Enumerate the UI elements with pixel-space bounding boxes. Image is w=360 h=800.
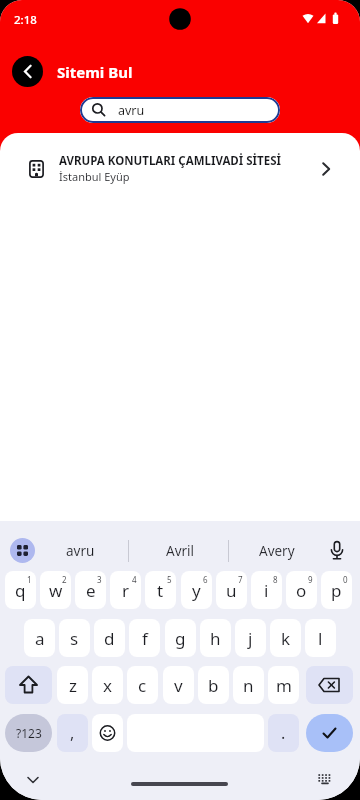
staticText: 7	[238, 574, 243, 585]
staticText: avru	[66, 542, 95, 560]
staticText: b	[208, 674, 219, 697]
button[interactable]: u	[216, 571, 247, 609]
staticText: 6	[203, 574, 208, 585]
staticText: v	[174, 674, 183, 697]
staticText: 1	[27, 574, 32, 585]
staticText: r	[122, 579, 130, 602]
button[interactable]: ,	[57, 714, 88, 752]
button[interactable]: r	[110, 571, 141, 609]
staticText: AVRUPA KONUTLARI ÇAMLIVADİ SİTESİ	[59, 153, 281, 169]
staticText: Avril	[166, 542, 195, 560]
button[interactable]	[5, 666, 52, 704]
button[interactable]	[12, 56, 43, 87]
button[interactable]: l	[305, 619, 336, 657]
button[interactable]	[92, 714, 123, 752]
staticText: .	[281, 722, 286, 744]
button[interactable]: c	[127, 666, 158, 704]
button[interactable]	[306, 714, 353, 752]
staticText: İstanbul Eyüp	[59, 169, 130, 184]
button[interactable]: Avery	[241, 537, 313, 565]
staticText: 8	[273, 574, 278, 585]
staticText: e	[86, 579, 96, 602]
staticText: 3	[97, 574, 102, 585]
staticText: 0	[343, 574, 348, 585]
button[interactable]: b	[198, 666, 229, 704]
button[interactable]: n	[233, 666, 264, 704]
staticText: y	[192, 579, 201, 602]
button[interactable]: a	[24, 619, 55, 657]
staticText: 5	[167, 574, 172, 585]
staticText: w	[49, 579, 63, 602]
staticText: Sitemi Bul	[57, 62, 133, 82]
button[interactable]: p	[321, 571, 352, 609]
staticText: 2	[62, 574, 67, 585]
staticText: f	[142, 627, 148, 650]
button[interactable]: Avril	[144, 537, 216, 565]
staticText: n	[243, 674, 254, 697]
button[interactable]: h	[200, 619, 231, 657]
button[interactable]: .	[268, 714, 299, 752]
staticText: t	[157, 579, 164, 602]
button[interactable]	[10, 538, 35, 563]
staticText: avru	[118, 102, 145, 119]
button[interactable]: j	[235, 619, 266, 657]
button[interactable]: y	[181, 571, 212, 609]
button[interactable]: w	[40, 571, 71, 609]
button[interactable]: AVRUPA KONUTLARI ÇAMLIVADİ SİTESİ	[0, 137, 360, 199]
button[interactable]: m	[268, 666, 299, 704]
staticText: o	[296, 579, 307, 602]
button[interactable]: f	[129, 619, 160, 657]
staticText: s	[70, 627, 79, 650]
staticText: a	[35, 627, 45, 650]
staticText: d	[104, 627, 115, 650]
staticText: i	[264, 579, 269, 602]
button[interactable]: avru	[80, 97, 280, 123]
button[interactable]: d	[94, 619, 125, 657]
staticText: h	[210, 627, 221, 650]
staticText: g	[175, 627, 186, 650]
staticText: ?123	[16, 725, 42, 741]
button[interactable]: g	[165, 619, 196, 657]
staticText: j	[248, 627, 253, 650]
button[interactable]: e	[75, 571, 106, 609]
button[interactable]: avru	[44, 537, 116, 565]
staticText: p	[331, 579, 342, 602]
button[interactable]	[324, 538, 350, 564]
staticText: m	[276, 674, 292, 697]
staticText: Avery	[259, 542, 295, 560]
button[interactable]: z	[57, 666, 88, 704]
staticText: u	[226, 579, 237, 602]
button[interactable]: t	[145, 571, 176, 609]
button[interactable]: o	[286, 571, 317, 609]
staticText: 4	[132, 574, 137, 585]
button[interactable]: v	[163, 666, 194, 704]
staticText: z	[69, 674, 77, 697]
button[interactable]	[306, 666, 353, 704]
staticText: k	[281, 627, 291, 650]
staticText: c	[138, 674, 147, 697]
staticText: 9	[308, 574, 313, 585]
button[interactable]: ?123	[5, 714, 52, 752]
staticText: ,	[70, 722, 75, 744]
staticText: l	[318, 627, 323, 650]
button[interactable]: i	[251, 571, 282, 609]
staticText: x	[103, 674, 112, 697]
staticText: q	[15, 579, 26, 602]
button[interactable]: q	[5, 571, 36, 609]
staticText: 2:18	[14, 12, 37, 28]
button[interactable]: k	[270, 619, 301, 657]
button[interactable]: s	[59, 619, 90, 657]
button[interactable]: x	[92, 666, 123, 704]
